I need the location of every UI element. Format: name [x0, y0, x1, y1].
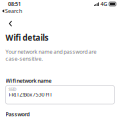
staticText: Wifi details — [5, 32, 48, 43]
staticText: Your network name and password are case-… — [5, 48, 96, 62]
staticText: Wifi network name — [5, 77, 51, 84]
staticText: 4G — [100, 0, 107, 8]
staticText: FRITZ!Box7530 HT — [8, 91, 52, 98]
staticText: SSID — [8, 86, 16, 92]
staticText: Search — [5, 7, 22, 15]
staticText: Password — [5, 111, 29, 118]
staticText: 08:51 — [8, 0, 21, 8]
button[interactable]: Search — [0, 8, 120, 14]
button[interactable]: SSID — [5, 85, 114, 104]
button[interactable]: Back — [4, 14, 17, 28]
